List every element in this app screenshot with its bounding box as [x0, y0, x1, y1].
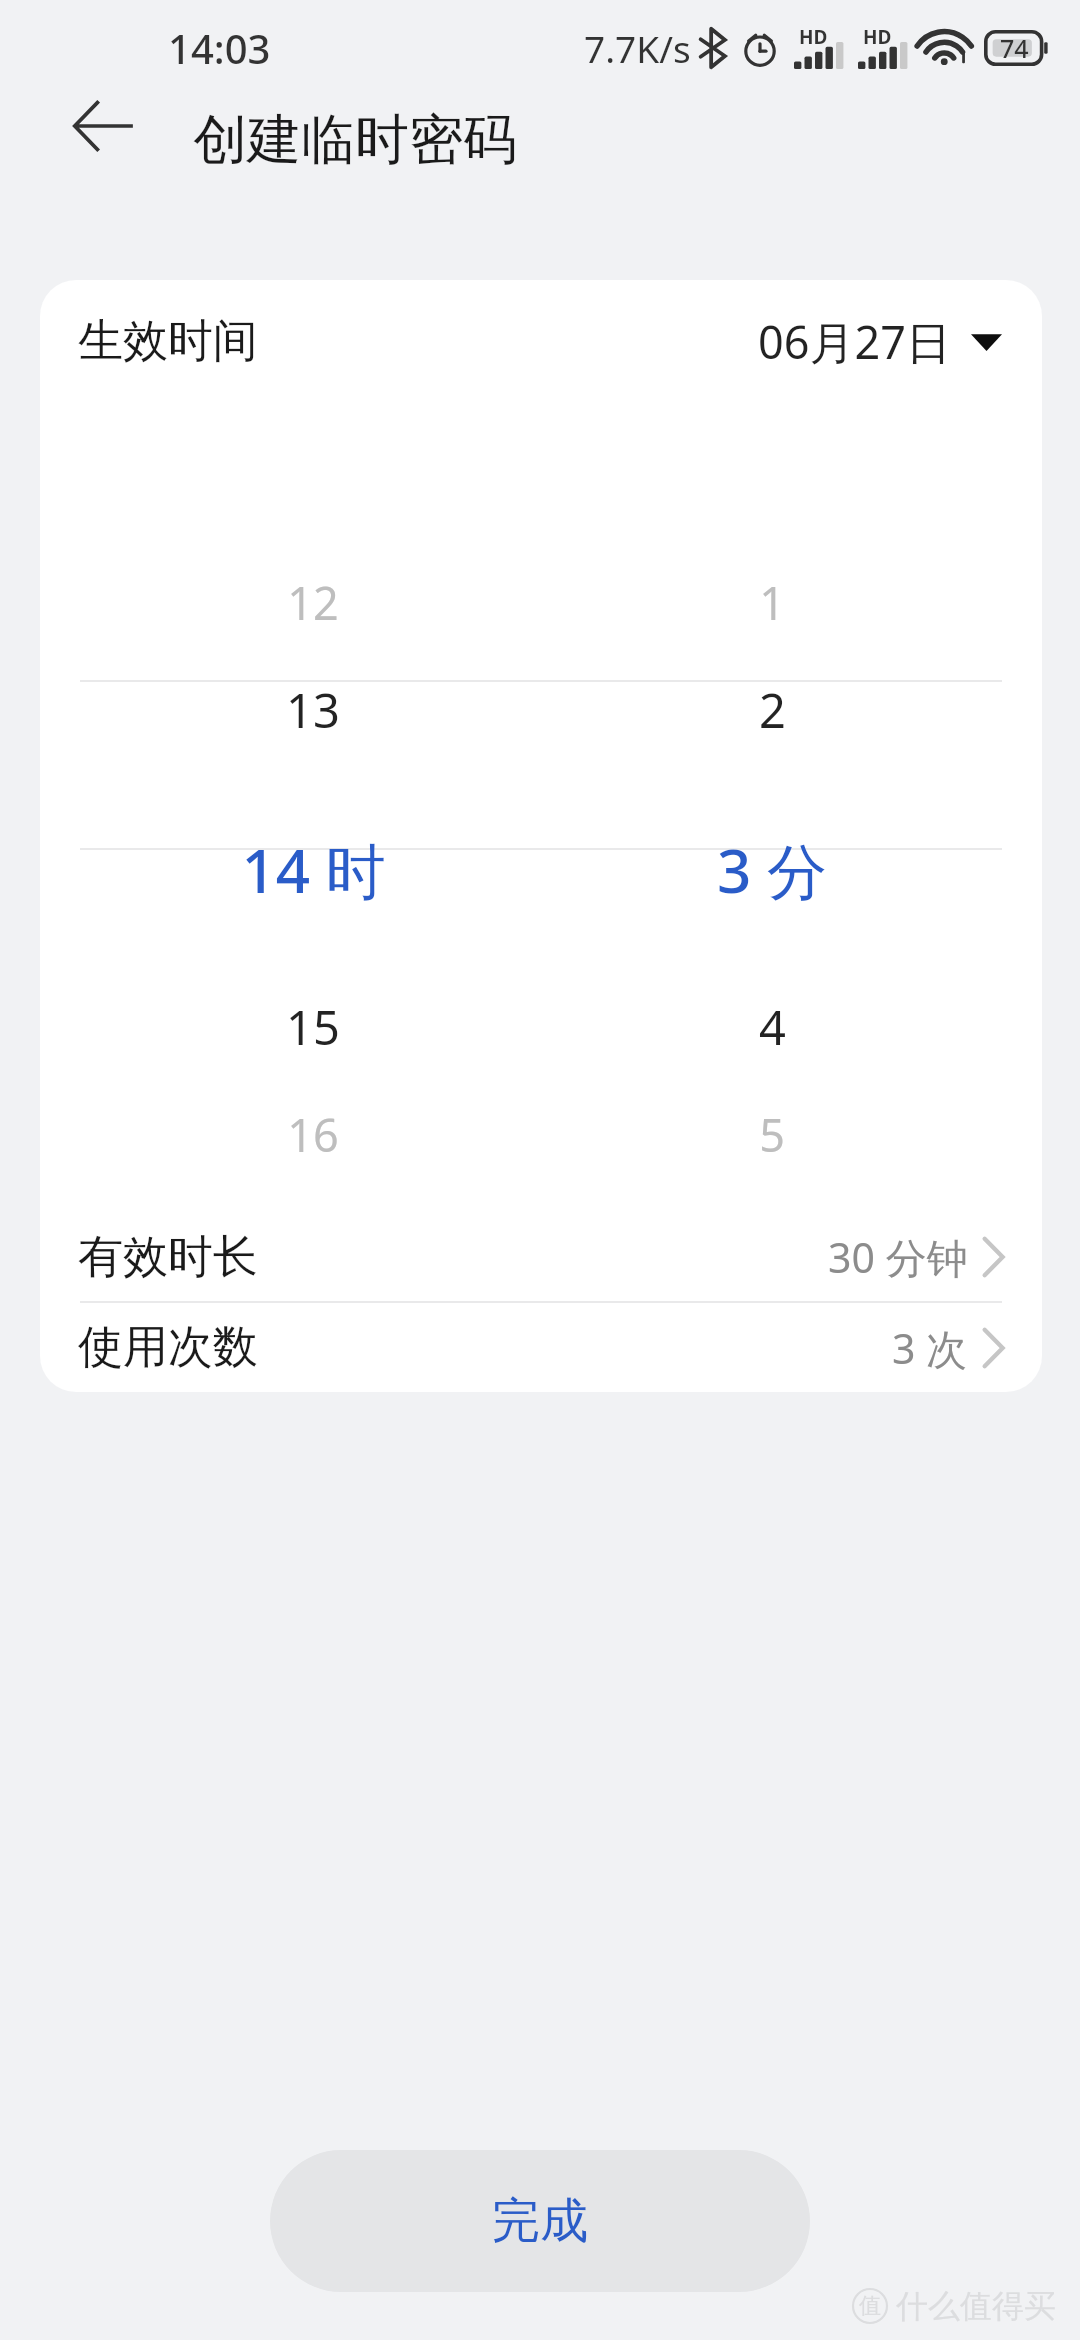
button[interactable]: 3 分	[612, 822, 932, 918]
button[interactable]: 14 时	[153, 822, 473, 918]
button[interactable]: 16	[153, 1086, 473, 1182]
button[interactable]: 2	[612, 662, 932, 758]
staticText: 生效时间	[78, 313, 258, 370]
button[interactable]: 返回	[56, 80, 148, 172]
button[interactable]: 15	[153, 979, 473, 1075]
staticText: 值	[859, 2292, 881, 2320]
staticText: 4	[759, 995, 786, 1059]
button[interactable]: 5	[612, 1086, 932, 1182]
staticText: 2	[759, 678, 786, 742]
staticText: 7.7K/s	[584, 23, 691, 73]
staticText: 什么值得买	[896, 2286, 1056, 2326]
staticText: 创建临时密码	[193, 106, 517, 174]
button[interactable]: 4	[612, 979, 932, 1075]
staticText: 74	[1000, 31, 1029, 65]
staticText: HD	[799, 24, 828, 50]
button[interactable]: 完成	[270, 2150, 810, 2292]
button[interactable]: 有效时长	[40, 1212, 1042, 1302]
button[interactable]: 13	[153, 662, 473, 758]
button[interactable]: 生效时间	[40, 280, 1042, 402]
staticText: 14:03	[168, 21, 271, 75]
button[interactable]: 1	[612, 554, 932, 650]
staticText: HD	[863, 24, 892, 50]
staticText: 15	[286, 995, 340, 1059]
staticText: 16	[287, 1104, 339, 1165]
staticText: 30 分钟	[828, 1229, 968, 1285]
staticText: 5	[759, 1104, 785, 1165]
staticText: 使用次数	[78, 1319, 258, 1376]
staticText: 12	[287, 572, 339, 633]
staticText: 3 次	[892, 1320, 968, 1376]
staticText: 1	[759, 572, 785, 633]
staticText: 06月27日	[758, 311, 951, 372]
staticText: 3 分	[717, 829, 827, 911]
button[interactable]: 使用次数	[40, 1303, 1042, 1392]
staticText: 13	[286, 678, 340, 742]
staticText: 14 时	[241, 829, 386, 911]
staticText: 有效时长	[78, 1229, 258, 1286]
button[interactable]: 12	[153, 554, 473, 650]
staticText: 完成	[492, 2191, 588, 2251]
